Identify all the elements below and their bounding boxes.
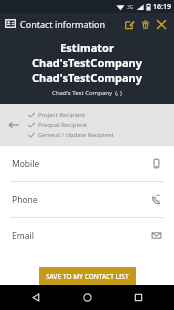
button[interactable]: Delete bbox=[137, 16, 153, 32]
button[interactable]: Recent apps bbox=[123, 285, 153, 310]
button[interactable]: Mobile bbox=[0, 146, 174, 181]
button[interactable]: Email bbox=[0, 218, 174, 253]
staticText: Mobile bbox=[12, 158, 40, 170]
staticText: Phone bbox=[12, 194, 38, 206]
staticText: 16:19 bbox=[153, 2, 171, 12]
button[interactable]: Back bbox=[21, 285, 51, 310]
staticText: SAVE TO MY CONTACT LIST bbox=[46, 272, 129, 281]
button[interactable]: Back bbox=[0, 108, 28, 142]
button[interactable]: Home bbox=[72, 285, 102, 310]
button[interactable]: Edit bbox=[121, 16, 137, 32]
staticText: Chad's Test Company (, ) bbox=[52, 89, 122, 97]
staticText: Prequal Recipient bbox=[38, 121, 88, 129]
button[interactable]: Close bbox=[153, 16, 169, 32]
staticText: Chad'sTestCompany bbox=[32, 70, 142, 85]
staticText: Project Recipient bbox=[38, 111, 86, 119]
staticText: Contact information bbox=[20, 18, 106, 30]
staticText: General / Update Recipient bbox=[38, 131, 114, 139]
button[interactable]: SAVE TO MY CONTACT LIST bbox=[39, 267, 136, 285]
button[interactable]: Phone bbox=[0, 182, 174, 217]
staticText: Estimator Chad'sTestCompany bbox=[8, 40, 166, 70]
staticText: 3G bbox=[127, 4, 134, 11]
staticText: Email bbox=[12, 230, 34, 242]
